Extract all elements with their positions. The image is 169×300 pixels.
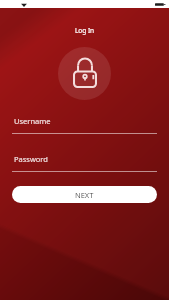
button[interactable]: NEXT [12,186,157,203]
staticText: NEXT [75,190,94,200]
button[interactable]: Username [12,116,157,134]
other: Lock [73,59,97,88]
staticText: Username [14,116,51,126]
button[interactable]: Password [12,154,157,172]
staticText: Password [14,154,48,164]
staticText: Log In [0,26,169,35]
